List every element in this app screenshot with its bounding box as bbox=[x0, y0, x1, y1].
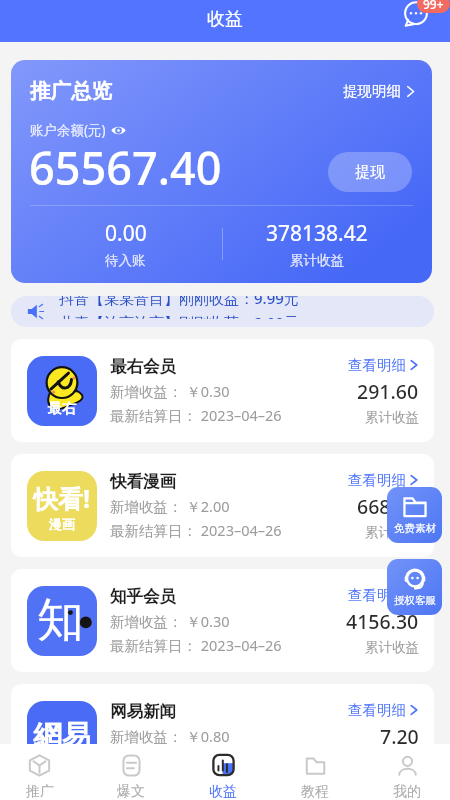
button[interactable]: 收益 bbox=[177, 744, 269, 800]
staticText: 最新结算日： 2023–04–26 bbox=[110, 405, 282, 425]
button[interactable]: 最右 bbox=[11, 339, 434, 442]
button[interactable]: 抖音【某某音目】刚刚收益：9.99元 bbox=[11, 296, 434, 327]
staticText: 291.60 bbox=[357, 378, 419, 405]
staticText: 新增收益： ￥2.00 bbox=[110, 496, 230, 516]
staticText: 爆文 bbox=[117, 783, 145, 800]
staticText: 網易 bbox=[33, 718, 91, 755]
button[interactable]: 查看明细 bbox=[348, 356, 419, 374]
staticText: 推广 bbox=[26, 783, 54, 800]
staticText: 378138.42 bbox=[266, 219, 368, 248]
button[interactable]: 查看明细 bbox=[348, 701, 419, 719]
staticText: 查看明细 bbox=[348, 701, 406, 719]
button[interactable]: 網易 bbox=[11, 684, 434, 787]
staticText: 累计收益 bbox=[365, 524, 419, 541]
staticText: 教程 bbox=[301, 783, 329, 800]
staticText: 快看! bbox=[33, 481, 91, 515]
button[interactable]: 快看! bbox=[11, 454, 434, 557]
staticText: 收益 bbox=[209, 783, 237, 800]
staticText: 待入账 bbox=[105, 252, 146, 269]
button[interactable]: Messages bbox=[403, 1, 429, 27]
button[interactable]: 知 bbox=[11, 569, 434, 672]
staticText: 新增收益： ￥0.30 bbox=[110, 381, 230, 401]
staticText: 累计收益 bbox=[365, 409, 419, 426]
button[interactable]: 提现明细 bbox=[343, 82, 424, 100]
staticText: 4156.30 bbox=[346, 608, 419, 635]
staticText: 最新结算日： 2023–04–26 bbox=[110, 520, 282, 540]
staticText: 提现明细 bbox=[343, 82, 401, 100]
staticText: 99+ bbox=[423, 0, 444, 12]
staticText: 累计收益 bbox=[290, 252, 344, 269]
staticText: 最右 bbox=[48, 400, 76, 418]
staticText: 累计收益 bbox=[365, 639, 419, 656]
button[interactable]: 免费素材 bbox=[387, 487, 442, 543]
staticText: 累计收益 bbox=[365, 754, 419, 771]
staticText: 收益 bbox=[207, 8, 243, 31]
staticText: 抖音【某某音目】刚刚收益：9.99元 bbox=[59, 296, 299, 308]
button[interactable]: 教程 bbox=[269, 744, 361, 800]
staticText: 7.20 bbox=[380, 723, 419, 750]
staticText: 免费素材 bbox=[394, 522, 436, 535]
staticText: 查看明细 bbox=[348, 471, 406, 489]
staticText: 提现 bbox=[355, 163, 385, 182]
staticText: 最右会员 bbox=[110, 356, 176, 377]
staticText: 知乎会员 bbox=[110, 586, 176, 607]
button[interactable]: 查看明细 bbox=[348, 471, 419, 489]
staticText: 65567.40 bbox=[29, 137, 222, 198]
button[interactable]: 推广 bbox=[0, 744, 85, 800]
staticText: 新增收益： ￥0.80 bbox=[110, 726, 230, 746]
staticText: 查看明细 bbox=[348, 586, 406, 604]
staticText: 查看明细 bbox=[348, 356, 406, 374]
staticText: 我的 bbox=[393, 783, 421, 800]
staticText: 最新结算日： 2023–04–26 bbox=[110, 635, 282, 655]
button[interactable]: 爆文 bbox=[85, 744, 177, 800]
staticText: 共喜【泊言泊言】刚刚收获：2.00元 bbox=[59, 312, 299, 319]
button[interactable]: 提现 bbox=[328, 152, 412, 192]
staticText: 最新结算日： 2023–04–26 bbox=[110, 750, 282, 770]
staticText: 授权客服 bbox=[394, 594, 436, 607]
staticText: 账户余额(元) bbox=[30, 121, 106, 139]
staticText: 新增收益： ￥0.30 bbox=[110, 611, 230, 631]
staticText: 知 bbox=[37, 591, 84, 650]
staticText: 快看漫画 bbox=[110, 471, 176, 492]
button[interactable]: 我的 bbox=[361, 744, 450, 800]
staticText: 网易新闻 bbox=[110, 701, 176, 722]
staticText: 668.00 bbox=[357, 493, 419, 520]
staticText: 漫画 bbox=[49, 516, 75, 532]
button[interactable]: 授权客服 bbox=[387, 559, 442, 615]
staticText: 0.00 bbox=[105, 219, 147, 248]
button[interactable]: 查看明细 bbox=[348, 586, 419, 604]
staticText: 推广总览 bbox=[30, 78, 112, 104]
